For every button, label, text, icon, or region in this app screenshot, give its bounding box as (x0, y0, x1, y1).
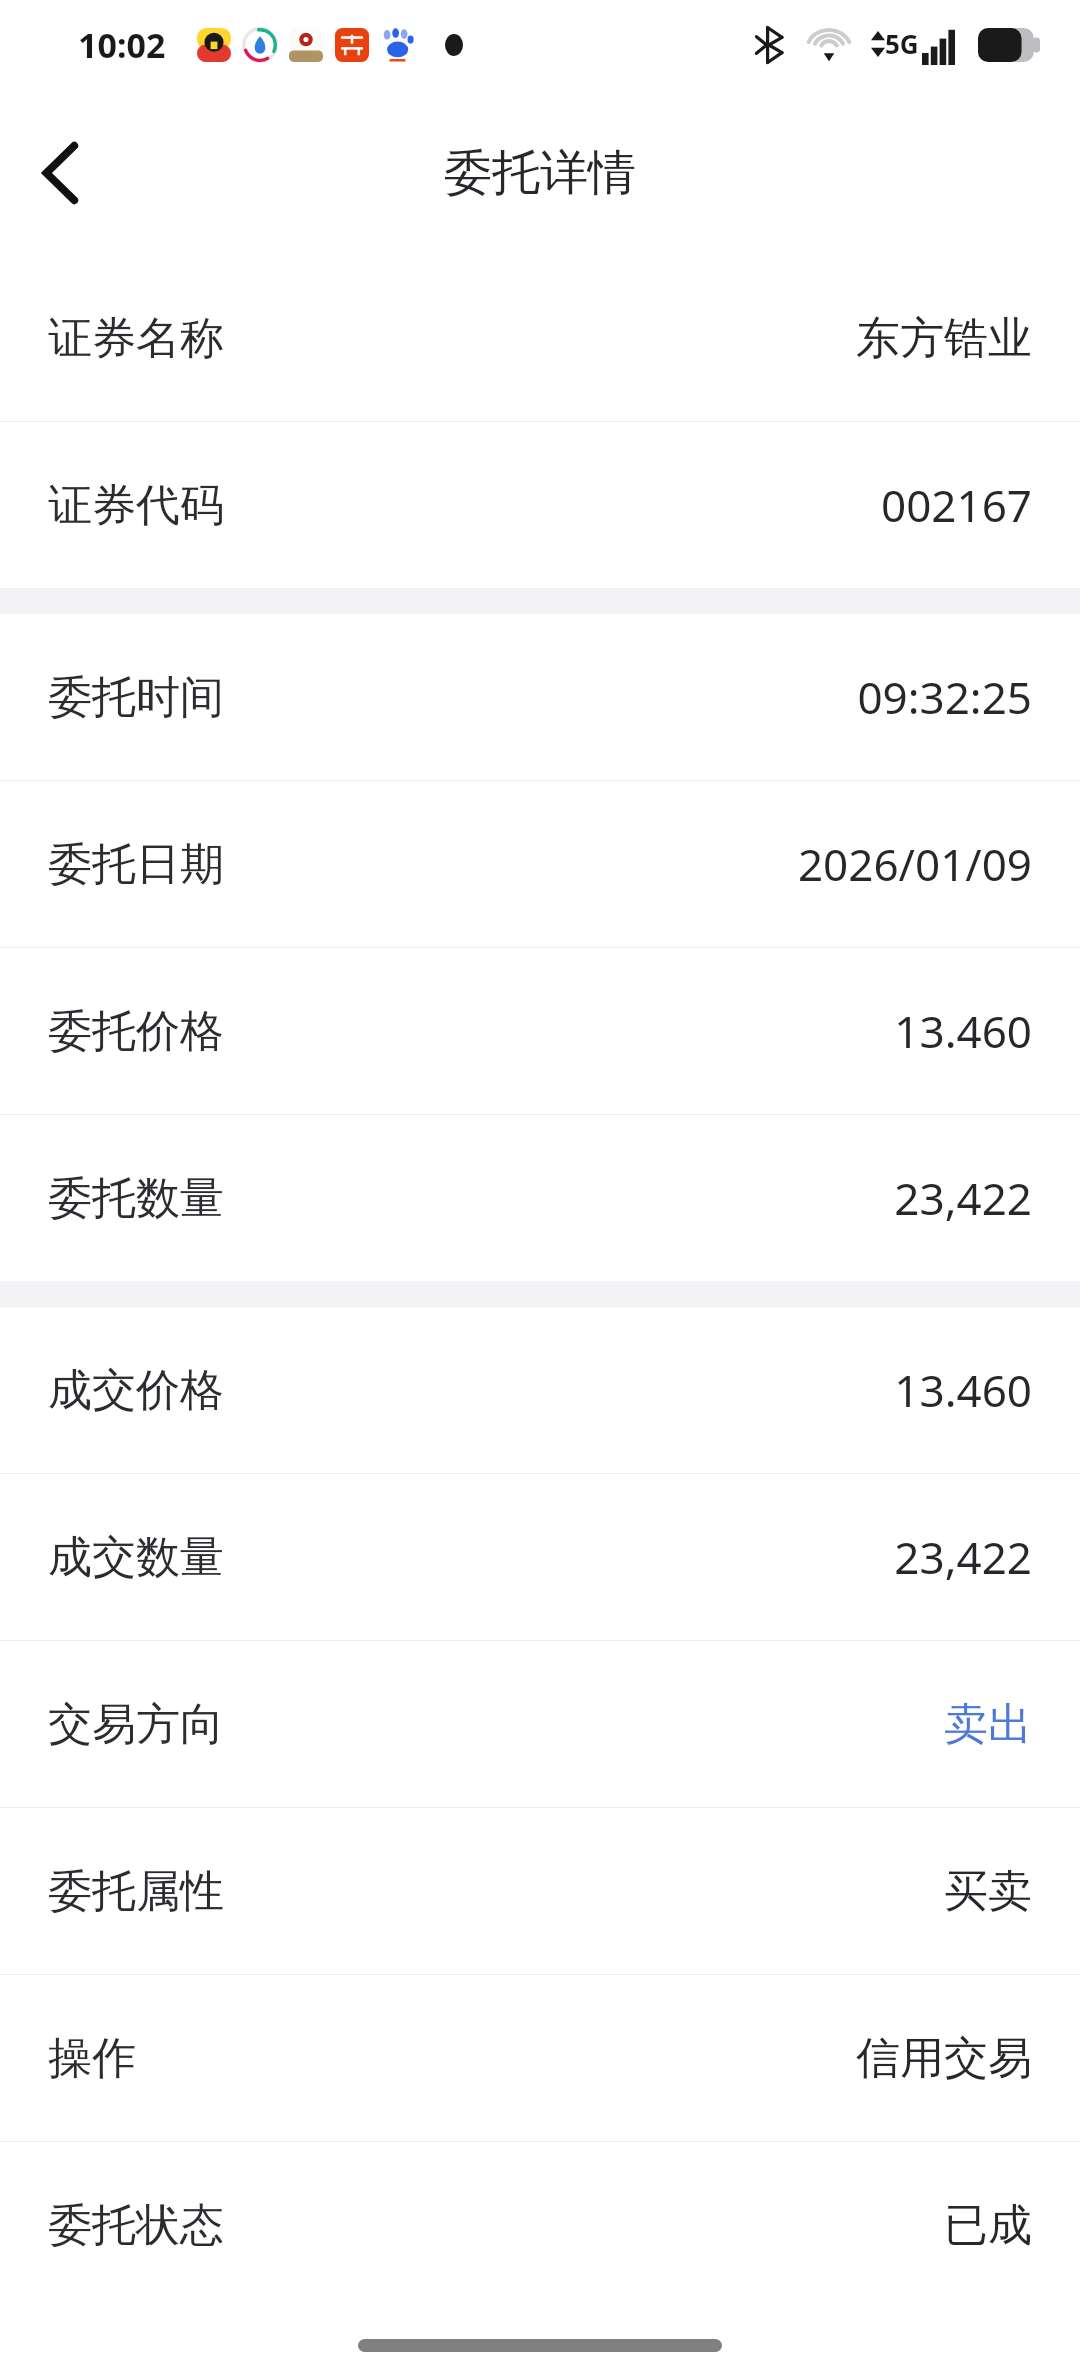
button[interactable]: 委托日期 (0, 781, 1080, 947)
staticText: 信用交易 (856, 2031, 1032, 2086)
staticText: 委托数量 (48, 1171, 224, 1226)
staticText: 成交数量 (48, 1530, 224, 1585)
staticText: 委托属性 (48, 1864, 224, 1919)
staticText: 已成 (944, 2198, 1032, 2253)
button[interactable]: 委托状态 (0, 2142, 1080, 2308)
button[interactable]: 证券名称 (0, 255, 1080, 421)
staticText: 成交价格 (48, 1363, 224, 1418)
staticText: 证券代码 (48, 478, 224, 533)
staticText: 卖出 (944, 1697, 1032, 1752)
button[interactable]: 操作 (0, 1975, 1080, 2141)
staticText: 委托时间 (48, 670, 224, 725)
staticText: 委托价格 (48, 1004, 224, 1059)
staticText: 2026/01/09 (797, 834, 1032, 894)
staticText: 证券名称 (48, 311, 224, 366)
button[interactable]: 成交价格 (0, 1307, 1080, 1473)
staticText: 13.460 (894, 1360, 1032, 1420)
staticText: 13.460 (894, 1001, 1032, 1061)
button[interactable]: 委托数量 (0, 1115, 1080, 1281)
button[interactable]: 委托属性 (0, 1808, 1080, 1974)
staticText: 操作 (48, 2031, 136, 2086)
button[interactable]: 委托价格 (0, 948, 1080, 1114)
staticText: 10:02 (78, 22, 166, 68)
button[interactable]: 委托时间 (0, 614, 1080, 780)
staticText: 5G (885, 26, 919, 61)
staticText: 委托详情 (444, 143, 636, 203)
staticText: 23,422 (894, 1168, 1032, 1228)
button[interactable]: 成交数量 (0, 1474, 1080, 1640)
button[interactable]: 证券代码 (0, 422, 1080, 588)
staticText: 002167 (880, 475, 1032, 535)
button[interactable]: 交易方向 (0, 1641, 1080, 1807)
staticText: 09:32:25 (857, 667, 1032, 727)
staticText: 交易方向 (48, 1697, 224, 1752)
staticText: 23,422 (894, 1527, 1032, 1587)
staticText: 委托日期 (48, 837, 224, 892)
staticText: 委托状态 (48, 2198, 224, 2253)
staticText: 东方锆业 (856, 311, 1032, 366)
staticText: 买卖 (944, 1864, 1032, 1919)
button[interactable]: 返回 (14, 127, 106, 219)
